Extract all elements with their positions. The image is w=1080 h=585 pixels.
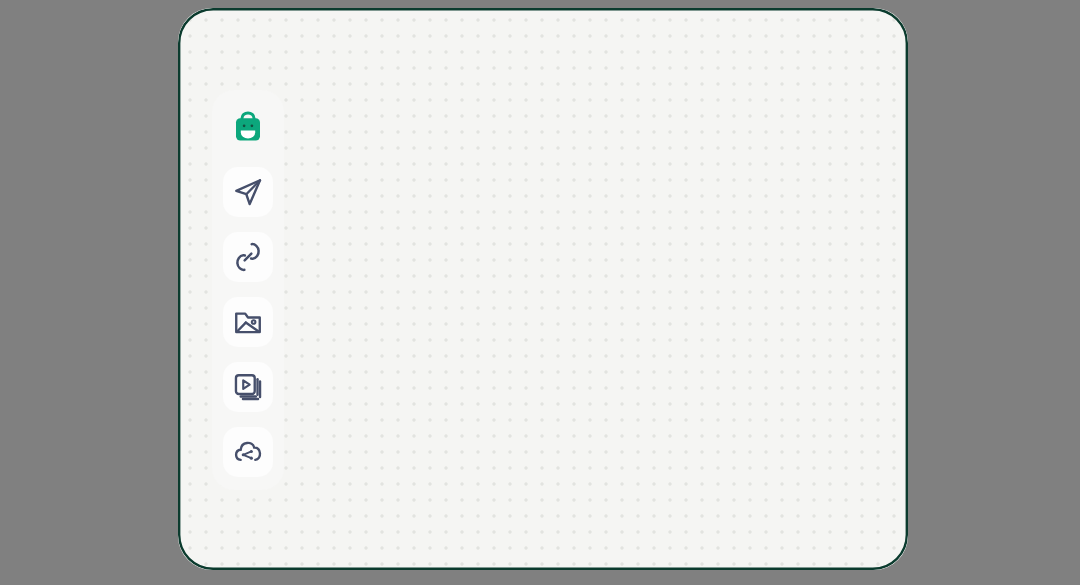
button[interactable]: Cloud share [223,427,273,477]
button[interactable]: Images [223,297,273,347]
button[interactable]: Shop home [223,102,273,152]
button[interactable]: Videos [223,362,273,412]
button[interactable]: Copy link [223,232,273,282]
button[interactable]: Send [223,167,273,217]
